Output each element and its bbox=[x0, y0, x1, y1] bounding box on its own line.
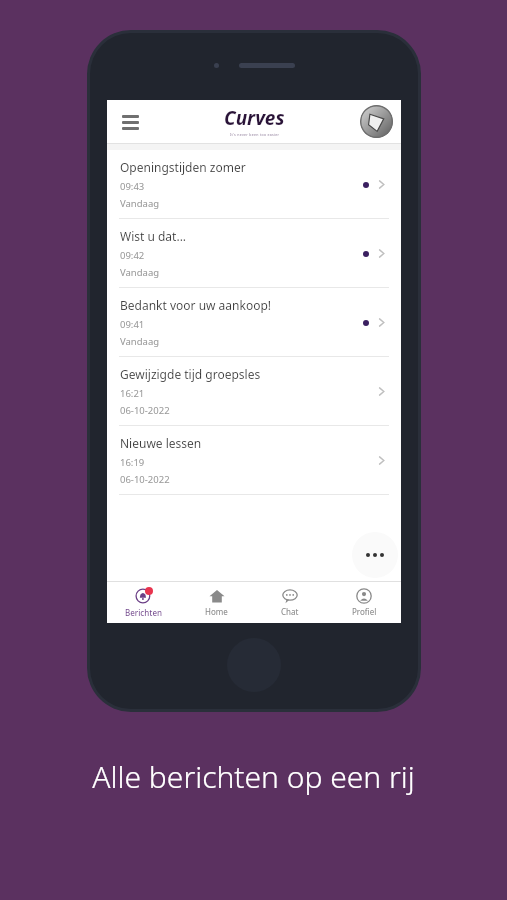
staticText: Curves bbox=[224, 105, 285, 131]
staticText: Home bbox=[205, 606, 228, 617]
button[interactable]: Wist u dat... bbox=[107, 219, 401, 287]
staticText: Gewijzigde tijd groepsles bbox=[120, 366, 261, 382]
button[interactable]: Home bbox=[180, 582, 253, 623]
staticText: It's never been too easier bbox=[230, 132, 280, 137]
staticText: 16:19 bbox=[120, 456, 145, 469]
button[interactable]: Bedankt voor uw aankoop! bbox=[107, 288, 401, 356]
staticText: Vandaag bbox=[120, 266, 160, 279]
staticText: Vandaag bbox=[120, 335, 160, 348]
staticText: Bedankt voor uw aankoop! bbox=[120, 297, 272, 313]
button[interactable]: Chat bbox=[253, 582, 327, 623]
button[interactable]: Menu bbox=[116, 108, 144, 136]
staticText: Openingstijden zomer bbox=[120, 159, 246, 175]
staticText: Alle berichten op een rij bbox=[92, 756, 415, 797]
staticText: Profiel bbox=[352, 606, 377, 617]
staticText: Berichten bbox=[125, 607, 162, 618]
staticText: 16:21 bbox=[120, 387, 145, 400]
button[interactable]: Profile avatar bbox=[360, 105, 393, 138]
staticText: 06-10-2022 bbox=[120, 404, 170, 417]
button[interactable]: Profiel bbox=[327, 582, 401, 623]
staticText: Chat bbox=[281, 606, 299, 617]
button[interactable]: Nieuwe lessen bbox=[107, 426, 401, 494]
staticText: 09:41 bbox=[120, 318, 145, 331]
staticText: Nieuwe lessen bbox=[120, 435, 202, 451]
button[interactable]: Openingstijden zomer bbox=[107, 150, 401, 218]
other: Home button bbox=[227, 638, 281, 692]
button[interactable]: Gewijzigde tijd groepsles bbox=[107, 357, 401, 425]
staticText: 09:42 bbox=[120, 249, 145, 262]
button[interactable]: More options bbox=[352, 532, 398, 578]
staticText: 06-10-2022 bbox=[120, 473, 170, 486]
staticText: Wist u dat... bbox=[120, 228, 187, 244]
staticText: 09:43 bbox=[120, 180, 145, 193]
button[interactable]: Berichten bbox=[107, 582, 180, 623]
staticText: Vandaag bbox=[120, 197, 160, 210]
